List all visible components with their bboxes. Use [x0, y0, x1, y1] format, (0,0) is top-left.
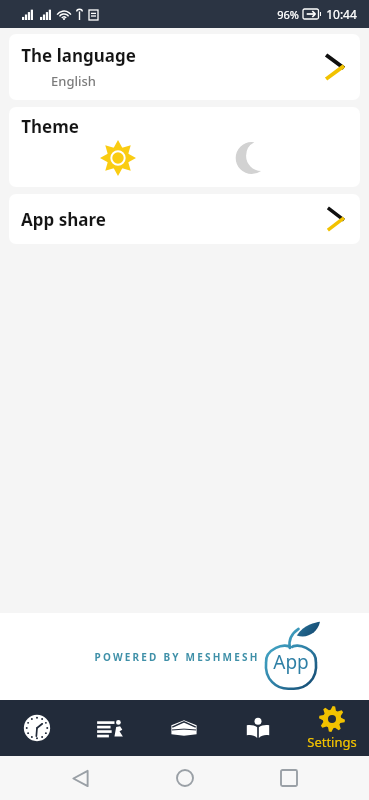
- button[interactable]: Light theme: [95, 135, 141, 181]
- staticText: The language: [21, 44, 136, 67]
- button[interactable]: Back: [56, 756, 104, 800]
- button[interactable]: The language: [9, 34, 360, 100]
- staticText: App: [273, 649, 309, 675]
- button[interactable]: App share: [9, 194, 360, 244]
- button[interactable]: Recents: [265, 756, 313, 800]
- button[interactable]: Home: [161, 756, 209, 800]
- button[interactable]: Quran: [221, 700, 295, 756]
- staticText: POWERED BY MESHMESH: [94, 650, 260, 664]
- staticText: 10:44: [326, 6, 357, 22]
- staticText: Theme: [21, 115, 79, 138]
- button[interactable]: Dark theme: [228, 135, 274, 181]
- button[interactable]: Azkar: [73, 700, 147, 756]
- staticText: 96%: [277, 7, 299, 22]
- button[interactable]: Prayer times: [0, 700, 73, 756]
- staticText: App share: [21, 208, 106, 231]
- button[interactable]: Qibla: [147, 700, 221, 756]
- staticText: Settings: [307, 733, 357, 751]
- staticText: English: [51, 72, 96, 90]
- button[interactable]: Settings: [295, 700, 369, 756]
